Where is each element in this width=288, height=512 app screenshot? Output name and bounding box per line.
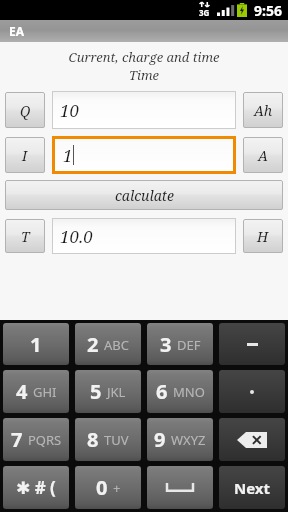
staticText: TUV bbox=[104, 431, 129, 449]
staticText: JKL bbox=[107, 383, 126, 401]
staticText: 7 bbox=[11, 426, 23, 453]
staticText: Next bbox=[234, 478, 271, 498]
button[interactable]: Space bbox=[147, 466, 213, 509]
staticText: Current, charge and time bbox=[0, 48, 288, 66]
staticText: I bbox=[22, 146, 28, 165]
button[interactable]: 6 bbox=[147, 370, 213, 413]
staticText: 1 bbox=[30, 331, 42, 358]
staticText: 3G bbox=[199, 7, 210, 18]
staticText: ABC bbox=[104, 336, 129, 354]
button[interactable]: Q bbox=[5, 92, 45, 128]
staticText: PQRS bbox=[28, 431, 62, 449]
staticText: + bbox=[113, 479, 121, 497]
staticText: Time bbox=[0, 66, 288, 84]
staticText: 1 bbox=[63, 144, 73, 167]
button[interactable]: 5 bbox=[75, 370, 141, 413]
staticText: A bbox=[258, 146, 268, 165]
staticText: 0 bbox=[96, 474, 108, 501]
button[interactable]: H bbox=[243, 219, 283, 253]
staticText: 8 bbox=[87, 426, 99, 453]
button[interactable]: calculate bbox=[5, 180, 283, 210]
staticText: 9:56 bbox=[254, 1, 282, 20]
staticText: GHI bbox=[33, 383, 57, 401]
staticText: MNO bbox=[173, 383, 205, 401]
button[interactable]: ✱ # ( bbox=[3, 466, 69, 509]
staticText: calculate bbox=[115, 186, 174, 205]
button[interactable]: 1 bbox=[55, 139, 233, 171]
button[interactable]: Next bbox=[219, 466, 285, 509]
staticText: EA bbox=[9, 23, 25, 39]
staticText: 6 bbox=[156, 378, 168, 405]
button[interactable]: Delete bbox=[219, 418, 285, 461]
staticText: 3 bbox=[160, 331, 172, 358]
button[interactable]: 10 bbox=[52, 91, 236, 129]
button[interactable]: Ah bbox=[243, 92, 283, 128]
staticText: Q bbox=[20, 101, 31, 120]
staticText: T bbox=[21, 227, 30, 246]
staticText: ✱ # ( bbox=[16, 476, 56, 499]
button[interactable]: 10.0 bbox=[52, 218, 236, 254]
button[interactable]: A bbox=[243, 137, 283, 173]
button[interactable]: 7 bbox=[3, 418, 69, 461]
button[interactable]: 9 bbox=[147, 418, 213, 461]
staticText: Ah bbox=[254, 101, 273, 120]
button[interactable]: T bbox=[5, 219, 45, 253]
staticText: 5 bbox=[90, 378, 102, 405]
staticText: WXYZ bbox=[171, 431, 206, 449]
staticText: 10.0 bbox=[60, 225, 93, 248]
staticText: 10 bbox=[60, 99, 80, 122]
staticText: 9 bbox=[154, 426, 166, 453]
button[interactable]: 1 bbox=[3, 323, 69, 365]
staticText: 4 bbox=[16, 378, 28, 405]
button[interactable]: 4 bbox=[3, 370, 69, 413]
button[interactable]: I bbox=[5, 137, 45, 173]
button[interactable]: 2 bbox=[75, 323, 141, 365]
button[interactable]: 8 bbox=[75, 418, 141, 461]
button[interactable]: 3 bbox=[147, 323, 213, 365]
button[interactable]: Minus bbox=[219, 323, 285, 365]
staticText: H bbox=[257, 227, 269, 246]
button[interactable]: Decimal point bbox=[219, 370, 285, 413]
staticText: DEF bbox=[177, 336, 201, 354]
staticText: 2 bbox=[87, 331, 99, 358]
button[interactable]: 0 bbox=[75, 466, 141, 509]
